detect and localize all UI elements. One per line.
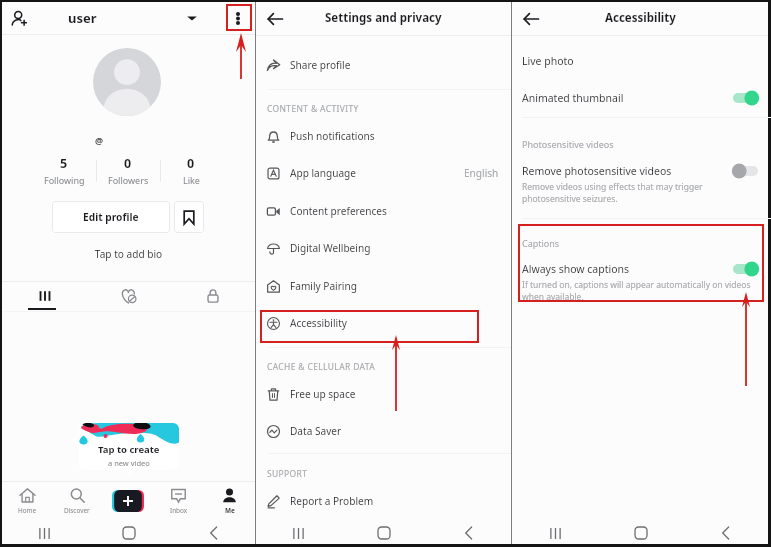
staticText: Remove videos using effects that may tri… xyxy=(522,181,703,205)
button[interactable]: Tap to create xyxy=(79,423,179,477)
button[interactable]: Discover xyxy=(52,483,102,519)
staticText: Discover xyxy=(64,506,90,515)
staticText: Data Saver xyxy=(290,424,342,438)
button[interactable]: Home xyxy=(341,522,426,544)
button[interactable]: Create xyxy=(112,490,144,512)
button[interactable]: Live photo xyxy=(512,50,768,72)
button[interactable]: Me xyxy=(204,483,255,519)
button[interactable]: Recents xyxy=(256,522,341,544)
button[interactable]: Inbox xyxy=(153,483,204,519)
button[interactable]: Home xyxy=(598,522,683,544)
staticText: Edit profile xyxy=(83,210,139,224)
button[interactable]: Always show captions xyxy=(512,258,768,280)
staticText: Family Pairing xyxy=(290,279,357,293)
button[interactable]: 5 xyxy=(33,155,95,186)
button[interactable]: Accessibility xyxy=(256,311,511,335)
staticText: If turned on, captions will appear autom… xyxy=(522,279,751,303)
button[interactable] xyxy=(93,48,161,116)
staticText: Free up space xyxy=(290,387,356,401)
staticText: Followers xyxy=(108,174,149,186)
staticText: Digital Wellbeing xyxy=(290,241,371,255)
staticText: 5 xyxy=(60,155,68,172)
staticText: Live photo xyxy=(522,54,574,68)
button[interactable]: Home xyxy=(87,522,171,544)
staticText: Photosensitive videos xyxy=(522,138,614,150)
staticText: Accessibility xyxy=(290,316,347,330)
staticText: a new video xyxy=(108,458,150,468)
button[interactable]: Switch account xyxy=(185,11,199,25)
button[interactable]: Back xyxy=(683,522,768,544)
staticText: Home xyxy=(18,506,37,515)
button[interactable]: Back xyxy=(426,522,511,544)
button[interactable]: 0 xyxy=(160,155,222,186)
staticText: Like xyxy=(183,174,200,186)
staticText: Captions xyxy=(522,237,560,249)
staticText: Push notifications xyxy=(290,129,375,143)
staticText: @ xyxy=(95,134,104,146)
staticText: Remove photosensitive videos xyxy=(522,164,672,178)
staticText: user xyxy=(68,9,97,27)
button[interactable]: Tap to add bio xyxy=(2,247,255,261)
button[interactable]: Posts xyxy=(2,284,87,308)
button[interactable]: Free up space xyxy=(256,382,511,406)
staticText: 0 xyxy=(124,155,132,172)
staticText: Me xyxy=(225,506,235,515)
staticText: Content preferences xyxy=(290,204,387,218)
button[interactable]: 0 xyxy=(97,155,159,186)
button[interactable]: Add friends xyxy=(7,6,31,30)
button[interactable]: Back xyxy=(264,8,286,30)
staticText: Share profile xyxy=(290,58,351,72)
button[interactable]: Share profile xyxy=(256,53,511,77)
staticText: Accessibility xyxy=(605,10,676,26)
button[interactable]: Recents xyxy=(512,522,598,544)
button[interactable]: Content preferences xyxy=(256,199,511,223)
button[interactable]: Recents xyxy=(2,522,87,544)
button[interactable]: Report a Problem xyxy=(256,489,511,513)
staticText: Animated thumbnail xyxy=(522,91,624,105)
button[interactable]: Family Pairing xyxy=(256,274,511,298)
button[interactable]: Liked xyxy=(87,284,171,308)
staticText: Settings and privacy xyxy=(325,10,442,26)
staticText: App language xyxy=(290,166,357,180)
button[interactable]: Back xyxy=(520,8,542,30)
button[interactable]: Digital Wellbeing xyxy=(256,236,511,260)
button[interactable]: Push notifications xyxy=(256,124,511,148)
button[interactable]: Remove photosensitive videos xyxy=(512,160,768,182)
button[interactable]: Back xyxy=(171,522,255,544)
staticText: 0 xyxy=(187,155,195,172)
staticText: Report a Problem xyxy=(290,494,374,508)
staticText: Following xyxy=(44,174,85,186)
button[interactable]: Home xyxy=(2,483,52,519)
staticText: Inbox xyxy=(170,506,188,515)
button[interactable]: More options xyxy=(228,8,248,28)
button[interactable]: App language xyxy=(256,161,511,185)
staticText: English xyxy=(464,166,499,180)
button[interactable]: Bookmarks xyxy=(174,201,204,233)
staticText: CONTENT & ACTIVITY xyxy=(267,103,359,115)
staticText: CACHE & CELLULAR DATA xyxy=(267,361,375,373)
button[interactable]: Animated thumbnail xyxy=(512,87,768,109)
staticText: Always show captions xyxy=(522,262,630,276)
button[interactable]: Edit profile xyxy=(52,201,170,233)
staticText: Tap to create xyxy=(98,443,160,456)
staticText: SUPPORT xyxy=(267,468,308,480)
button[interactable]: Private xyxy=(171,284,255,308)
button[interactable]: Data Saver xyxy=(256,419,511,443)
